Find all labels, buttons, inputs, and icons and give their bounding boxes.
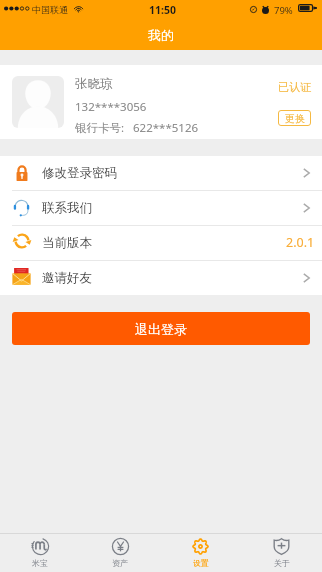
button[interactable]: 关于 [241, 534, 322, 572]
button[interactable]: 当前版本 [0, 226, 322, 260]
button[interactable]: 资产 [80, 534, 160, 572]
staticText: 联系我们 [42, 200, 92, 216]
staticText: 张晓琼 [75, 76, 113, 92]
staticText: 设置 [193, 558, 209, 568]
staticText: 退出登录 [135, 321, 187, 337]
staticText: 资产 [112, 558, 128, 568]
button[interactable]: 退出登录 [12, 312, 310, 345]
staticText: 米宝 [32, 558, 48, 568]
staticText: 当前版本 [42, 235, 92, 251]
button[interactable]: 米宝 [0, 534, 80, 572]
staticText: 11:50 [149, 3, 176, 17]
button[interactable]: 联系我们 [0, 191, 322, 225]
staticText: 中国联通 [32, 4, 68, 15]
staticText: 邀请好友 [42, 270, 92, 286]
staticText: 2.0.1 [286, 234, 315, 251]
staticText: 修改登录密码 [42, 165, 117, 181]
button[interactable]: 修改登录密码 [0, 156, 322, 190]
staticText: 我的 [148, 27, 174, 43]
staticText: 622***5126 [133, 120, 199, 136]
button[interactable]: 邀请好友 [0, 261, 322, 295]
staticText: 79% [274, 4, 293, 17]
staticText: 更换 [285, 112, 305, 125]
staticText: 132****3056 [75, 99, 147, 115]
staticText: 已认证 [278, 80, 311, 94]
staticText: 银行卡号: [75, 120, 125, 136]
button[interactable]: 设置 [160, 534, 241, 572]
button[interactable]: 更换 [278, 110, 311, 126]
staticText: 关于 [274, 558, 290, 568]
